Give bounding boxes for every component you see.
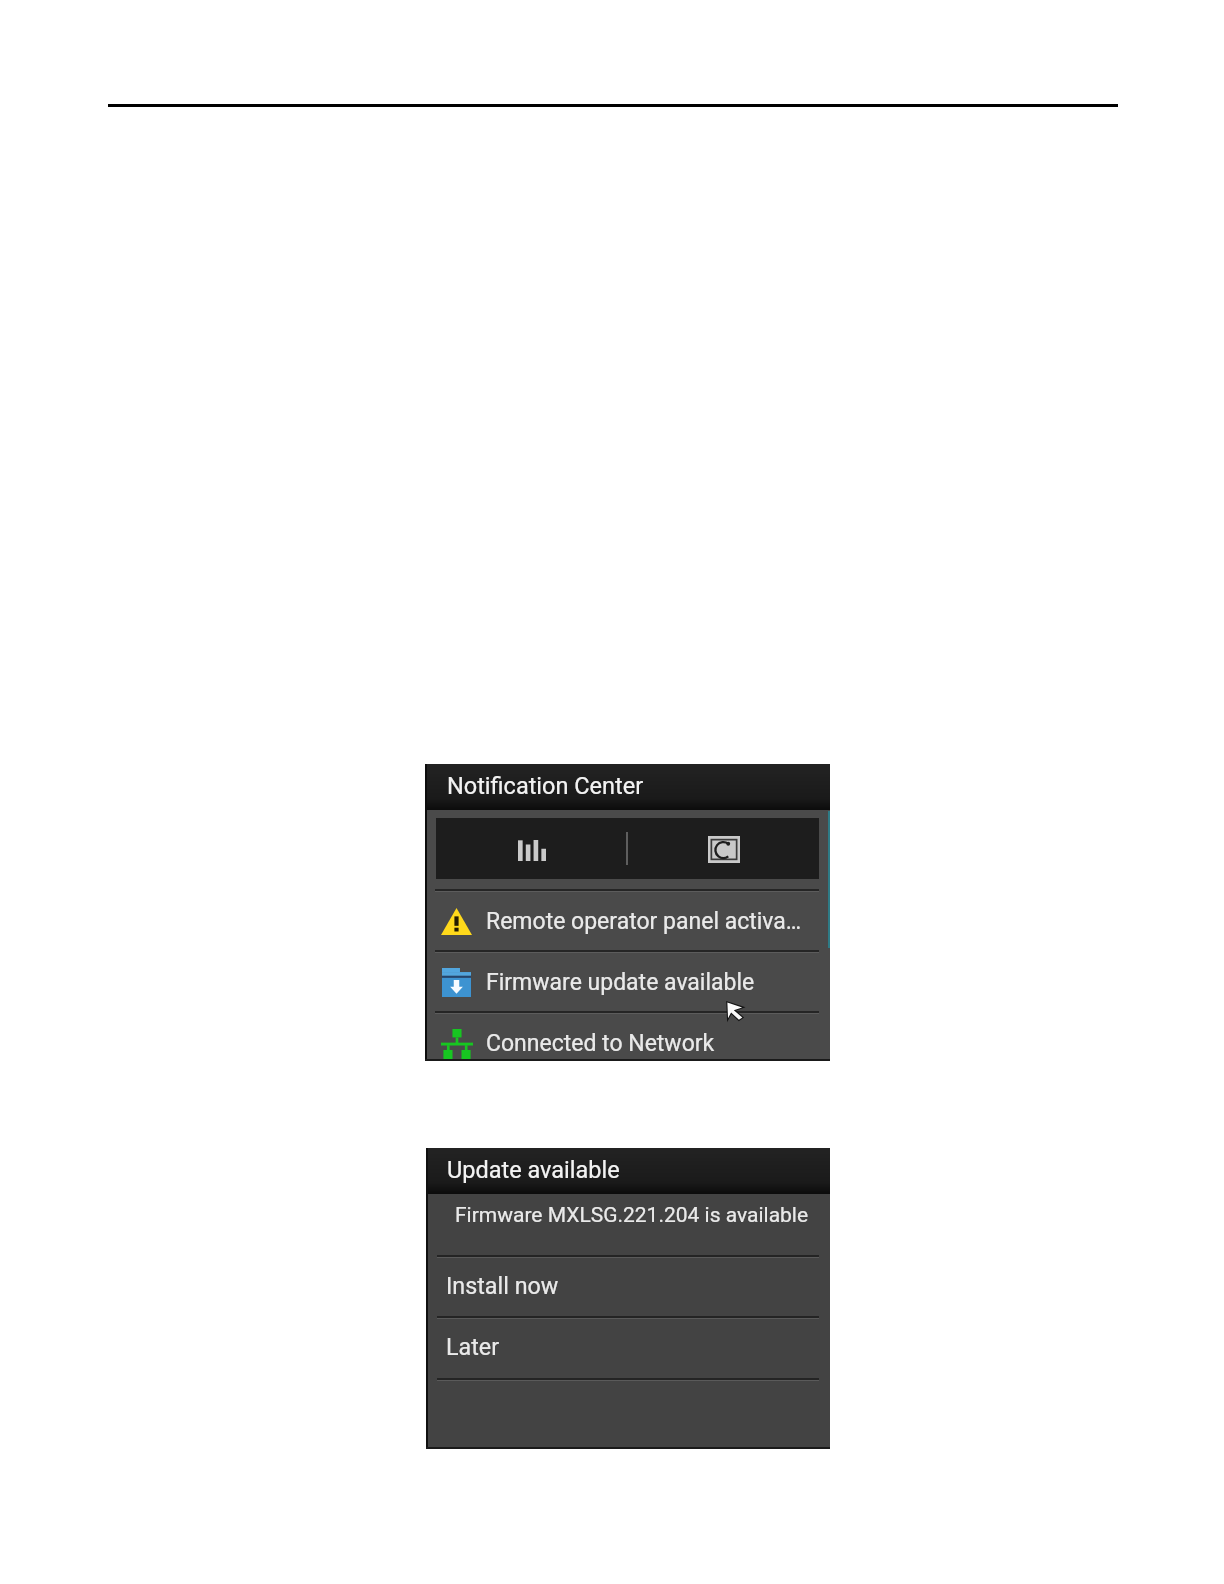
- button[interactable]: Later: [426, 1319, 830, 1378]
- staticText: Later: [446, 1333, 500, 1360]
- button[interactable]: Firmware update available: [425, 953, 830, 1011]
- staticText: Remote operator panel activa…: [486, 908, 802, 935]
- staticText: Connected to Network: [486, 1030, 715, 1057]
- staticText: Notification Center: [447, 772, 644, 800]
- staticText: Firmware update available: [486, 969, 755, 996]
- button[interactable]: Remote operator panel activa…: [425, 892, 830, 950]
- staticText: Install now: [446, 1272, 559, 1299]
- staticText: Update available: [447, 1156, 620, 1184]
- button[interactable]: Statistics: [436, 818, 626, 879]
- staticText: Firmware MXLSG.221.204 is available: [455, 1203, 809, 1228]
- button[interactable]: Install now: [426, 1258, 830, 1316]
- button[interactable]: Refresh: [628, 818, 819, 879]
- button[interactable]: Connected to Network: [425, 1014, 830, 1061]
